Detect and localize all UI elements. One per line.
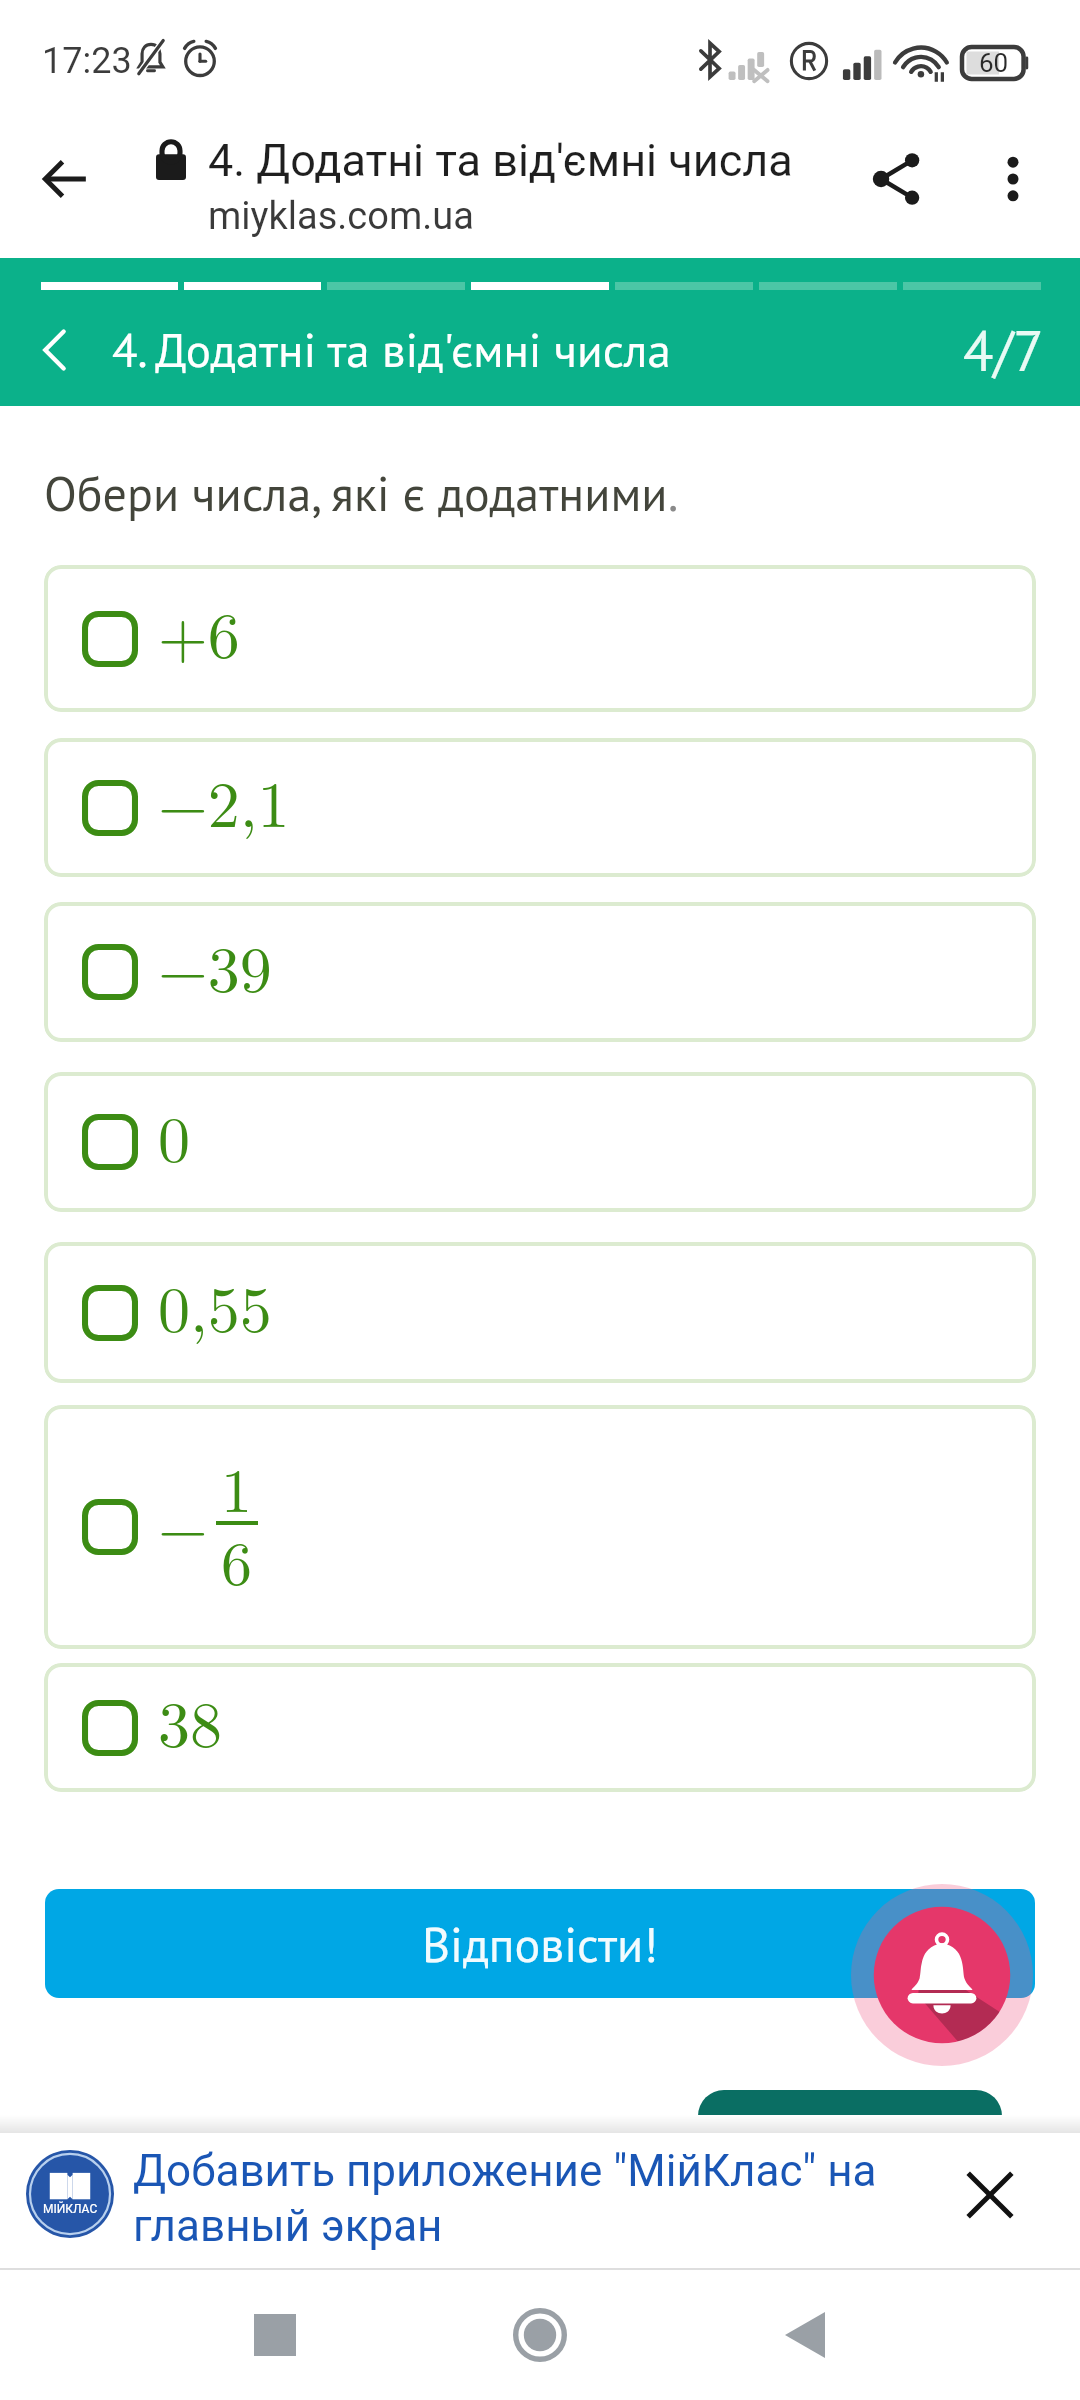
staticText: 4. Додатні та від'ємні числа — [208, 134, 793, 187]
button[interactable]: −39 — [44, 902, 1036, 1042]
button[interactable]: 0,55 — [44, 1242, 1036, 1383]
button[interactable]: Notifications — [851, 1884, 1033, 2066]
staticText: 6 — [221, 1515, 253, 1603]
staticText: Відповісти! — [422, 1913, 658, 1975]
staticText: 1 — [221, 1442, 253, 1530]
button[interactable]: 0 — [44, 1072, 1036, 1212]
button[interactable]: − — [44, 1405, 1036, 1649]
button[interactable]: Back — [11, 124, 121, 234]
button[interactable]: +6 — [44, 565, 1036, 712]
button[interactable]: Home — [495, 2290, 585, 2380]
staticText: 38 — [158, 1675, 222, 1766]
button[interactable]: −2,1 — [44, 738, 1036, 877]
staticText: −2,1 — [158, 755, 290, 846]
button[interactable]: Back — [760, 2290, 850, 2380]
staticText: Обери числа, які є додатними — [44, 462, 668, 524]
button[interactable]: More options — [958, 124, 1068, 234]
staticText: 60 — [979, 48, 1009, 78]
button[interactable]: Share — [842, 124, 952, 234]
staticText: 0 — [158, 1090, 190, 1181]
staticText: 4. Додатні та від'ємні числа — [112, 319, 671, 380]
staticText: Добавить приложение "МійКлас" на главный… — [133, 2145, 893, 2251]
staticText: . — [668, 462, 679, 524]
button[interactable]: Recents — [230, 2290, 320, 2380]
staticText: − — [158, 1478, 208, 1569]
button[interactable]: Close — [940, 2145, 1040, 2245]
button[interactable]: Back — [8, 305, 102, 395]
staticText: −39 — [158, 920, 272, 1011]
staticText: miyklas.com.ua — [208, 194, 474, 239]
staticText: +6 — [158, 586, 240, 677]
staticText: 4/7 — [963, 314, 1044, 386]
button[interactable]: Відповісти! — [45, 1889, 1035, 1998]
button[interactable]: 38 — [44, 1663, 1036, 1792]
staticText: 0,55 — [158, 1260, 272, 1351]
staticText: 17:23 — [42, 40, 132, 82]
staticText: МІЙКЛАС — [43, 2202, 98, 2216]
